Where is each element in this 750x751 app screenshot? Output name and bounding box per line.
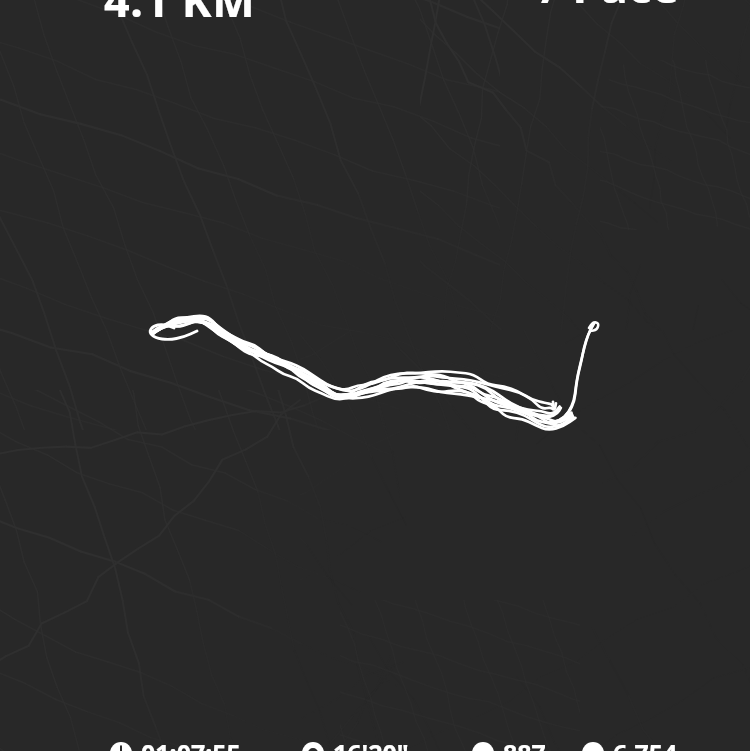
button[interactable]: 16'20" — [302, 736, 409, 751]
button[interactable]: 887 — [472, 736, 546, 751]
staticText: 16'20" — [333, 736, 409, 751]
button[interactable]: 4.1 KM — [104, 0, 256, 30]
staticText: 6,754 — [613, 736, 678, 751]
button[interactable]: 6,754 — [582, 736, 678, 751]
staticText: 887 — [503, 736, 546, 751]
button[interactable]: 01:07:55 — [110, 736, 241, 751]
button[interactable]: Route map — [0, 0, 750, 751]
button[interactable]: / Pace — [541, 0, 680, 16]
staticText: 01:07:55 — [141, 736, 241, 751]
